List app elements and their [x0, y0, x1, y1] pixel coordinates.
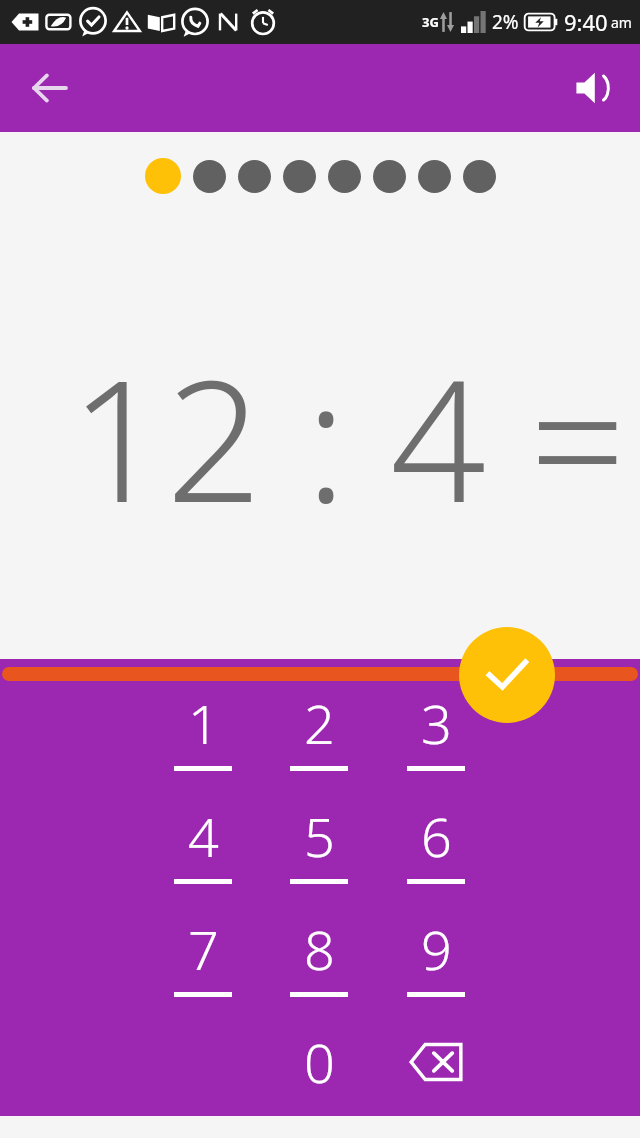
button[interactable]: 0	[271, 1022, 367, 1102]
staticText: 3G	[422, 13, 439, 31]
staticText: 2%	[492, 9, 519, 35]
button[interactable]: 4	[155, 796, 251, 876]
staticText: 3	[421, 686, 452, 760]
staticText: 2	[304, 686, 335, 760]
staticText: 9	[421, 912, 452, 986]
staticText: 4	[188, 799, 219, 873]
button[interactable]: 2	[271, 683, 367, 763]
staticText: 8	[304, 912, 335, 986]
button[interactable]: 9	[388, 909, 484, 989]
staticText: 12 : 4 =	[70, 322, 626, 551]
button[interactable]: Backspace	[388, 1022, 484, 1102]
button[interactable]: 7	[155, 909, 251, 989]
button[interactable]: Sound	[564, 58, 624, 118]
button[interactable]: 6	[388, 796, 484, 876]
staticText: 0	[304, 1025, 335, 1099]
staticText: 9:40	[564, 7, 608, 37]
button[interactable]: 3	[388, 683, 484, 763]
button[interactable]: 8	[271, 909, 367, 989]
button[interactable]: 1	[155, 683, 251, 763]
staticText: 5	[304, 799, 335, 873]
staticText: 7	[188, 912, 219, 986]
staticText: 6	[421, 799, 452, 873]
button[interactable]: Check answer	[459, 627, 555, 723]
staticText: 1	[188, 686, 219, 760]
button[interactable]: Back	[20, 58, 80, 118]
button[interactable]: 5	[271, 796, 367, 876]
staticText: am	[611, 13, 632, 32]
